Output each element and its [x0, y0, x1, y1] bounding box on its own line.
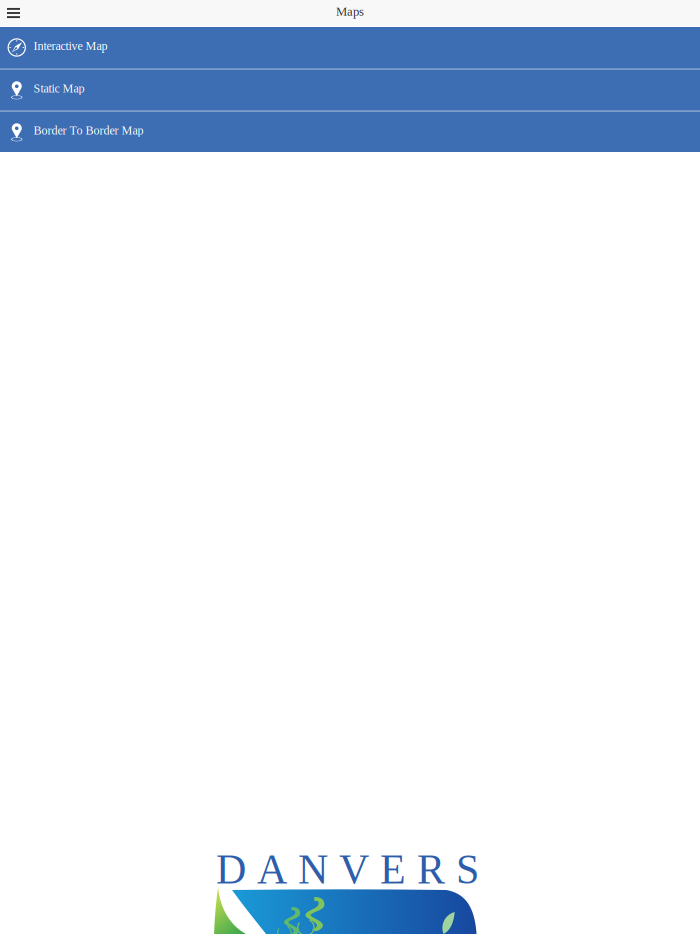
staticText: Interactive Map	[33, 39, 107, 53]
staticText: Maps	[336, 4, 364, 18]
button[interactable]: Static Map	[0, 70, 700, 110]
staticText: Border To Border Map	[33, 124, 143, 137]
button[interactable]: Border To Border Map	[0, 112, 700, 152]
button[interactable]: Menu	[0, 0, 27, 26]
staticText: Static Map	[33, 82, 84, 95]
staticText: D A N V E R S	[216, 846, 479, 892]
button[interactable]: Interactive Map	[0, 27, 700, 68]
